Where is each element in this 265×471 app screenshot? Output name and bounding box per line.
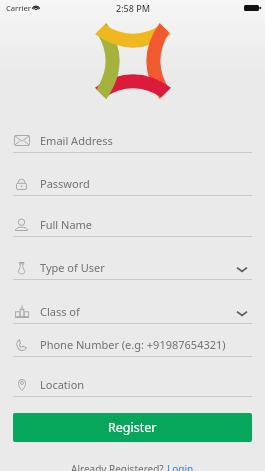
staticText: Location [40, 377, 85, 392]
staticText: Register [108, 419, 157, 436]
staticText: Class of [40, 304, 80, 319]
button[interactable]: Location [0, 357, 265, 397]
button[interactable]: Login [167, 462, 194, 471]
button[interactable]: Type of User [0, 237, 265, 280]
staticText: Full Name [40, 217, 93, 232]
button[interactable]: Password [0, 153, 265, 196]
button[interactable]: Phone Number (e.g: +91987654321) [0, 324, 265, 357]
staticText: 2:58 PM [116, 2, 150, 14]
button[interactable]: Email Address [0, 111, 265, 153]
staticText: Type of User [40, 260, 105, 275]
staticText: Carrier [6, 3, 31, 13]
staticText: Email Address [40, 133, 113, 148]
staticText: Password [40, 176, 90, 191]
staticText: Login [167, 462, 194, 471]
button[interactable]: Full Name [0, 196, 265, 237]
button[interactable]: Register [13, 413, 252, 442]
staticText: Phone Number (e.g: +91987654321) [40, 337, 226, 352]
staticText: Already Registered? [71, 462, 167, 471]
button[interactable]: Class of [0, 280, 265, 324]
